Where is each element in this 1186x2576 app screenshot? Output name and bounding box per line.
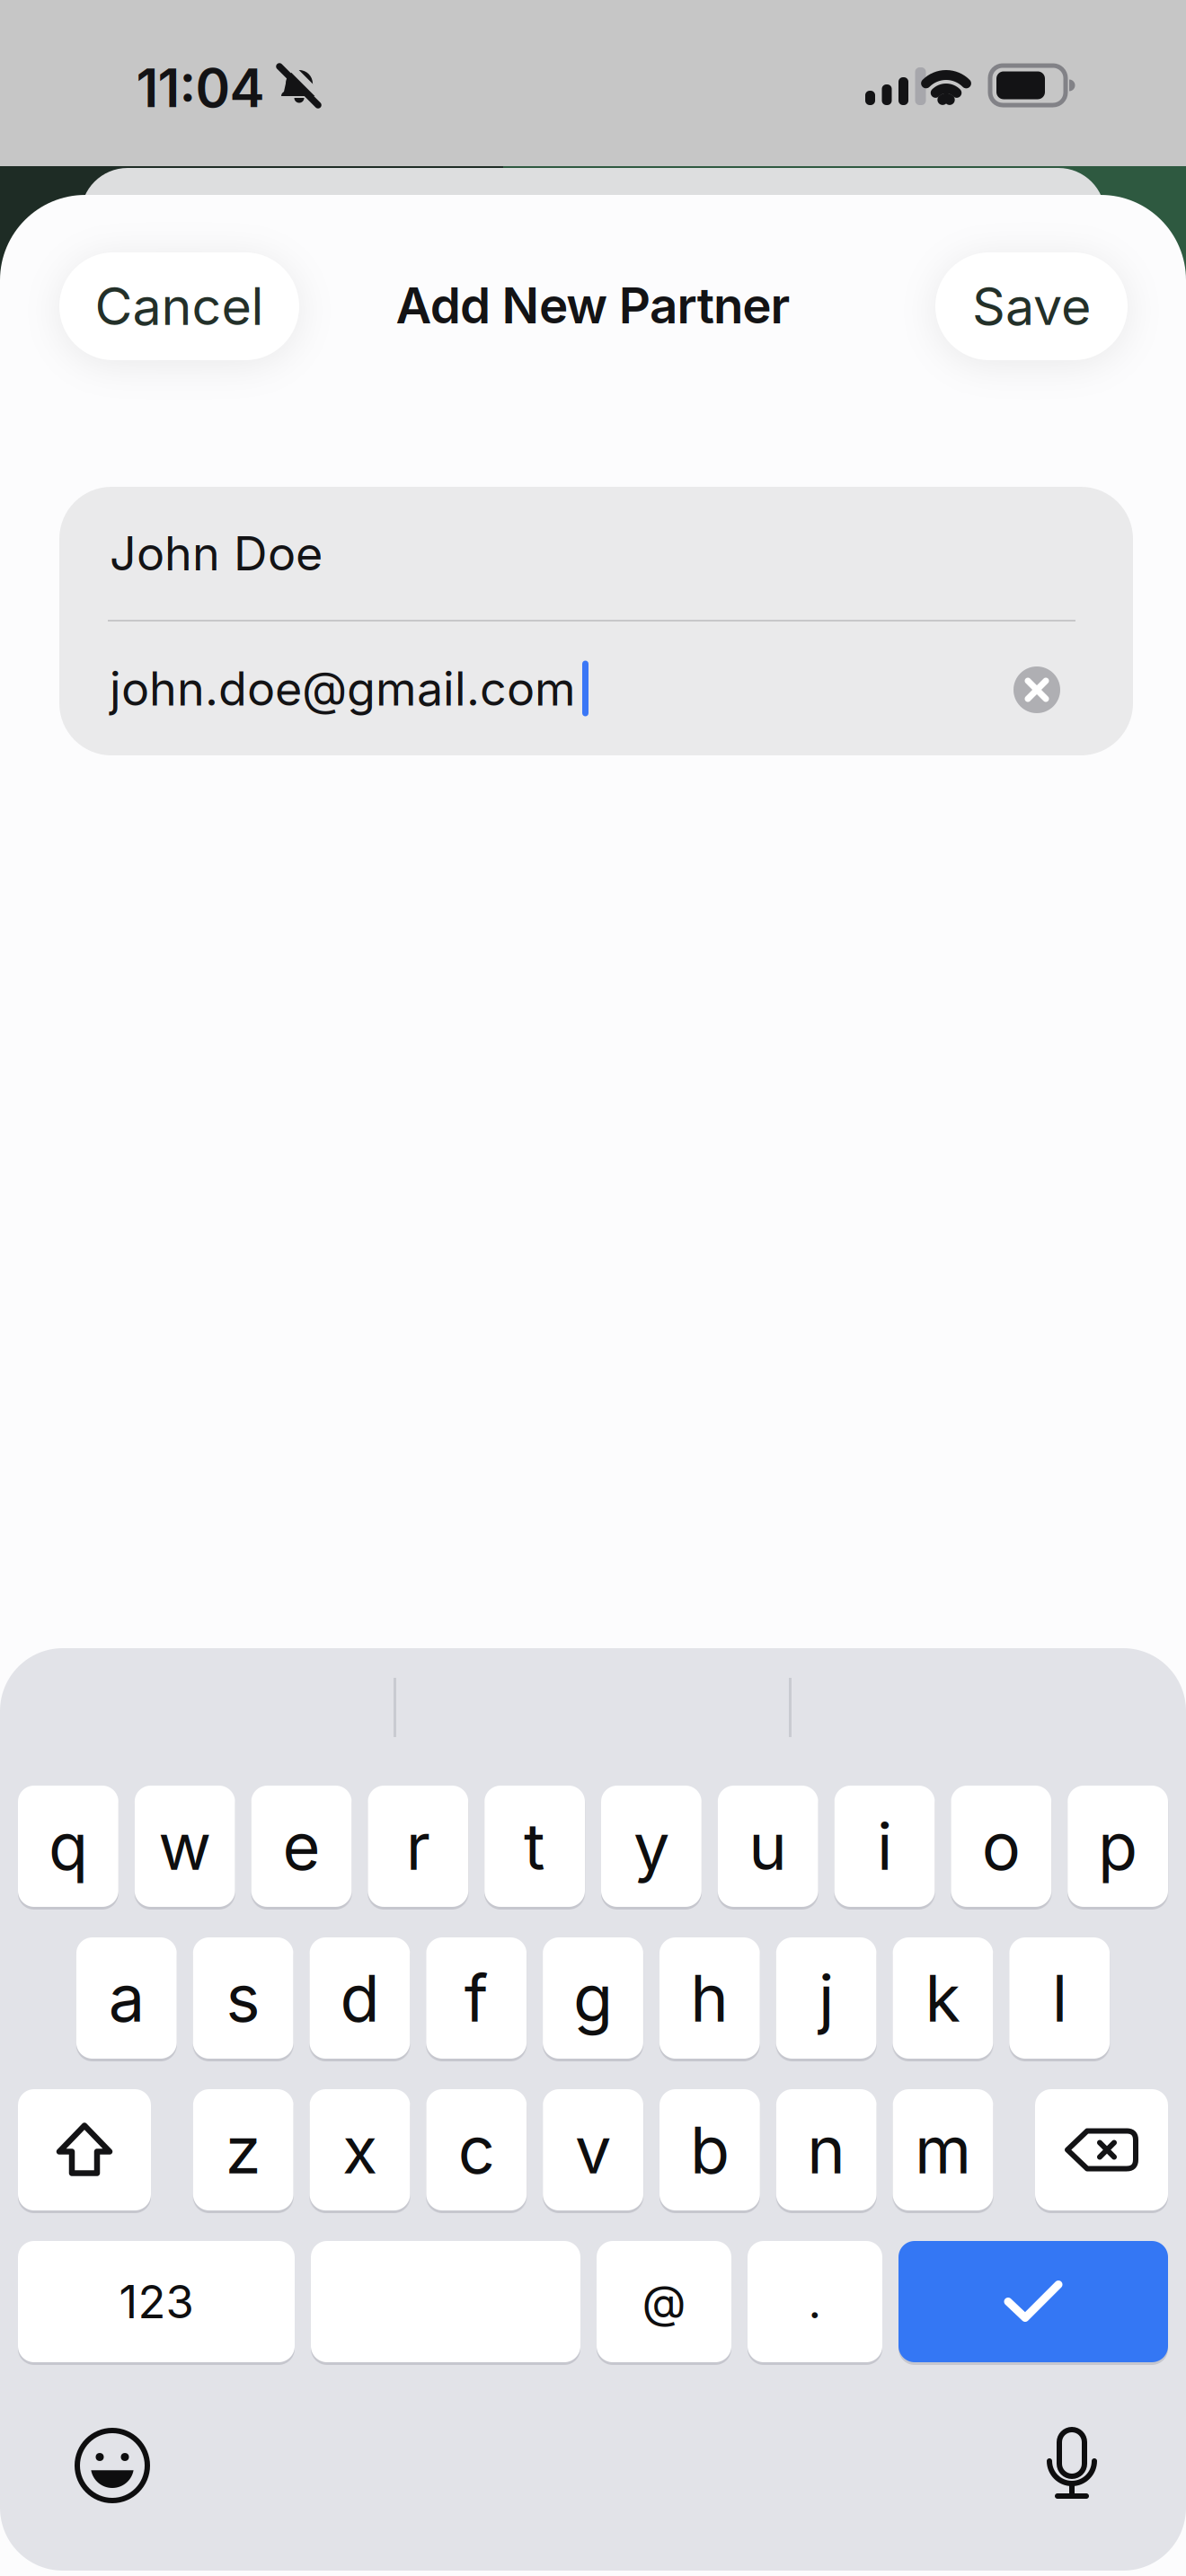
- button[interactable]: x: [310, 2089, 410, 2210]
- staticText: o: [982, 1807, 1020, 1885]
- button[interactable]: [898, 2241, 1168, 2362]
- staticText: a: [109, 1959, 144, 2037]
- staticText: b: [690, 2111, 729, 2189]
- staticText: n: [807, 2111, 846, 2189]
- button[interactable]: @: [597, 2241, 731, 2362]
- button[interactable]: k: [893, 1937, 993, 2059]
- button[interactable]: e: [251, 1786, 352, 1907]
- staticText: 11:04: [136, 56, 265, 120]
- staticText: t: [524, 1807, 545, 1885]
- button[interactable]: f: [426, 1937, 527, 2059]
- staticText: 123: [119, 2274, 194, 2329]
- button[interactable]: g: [543, 1937, 643, 2059]
- staticText: c: [458, 2111, 495, 2189]
- staticText: y: [633, 1807, 669, 1885]
- staticText: x: [342, 2111, 377, 2189]
- staticText: e: [283, 1807, 320, 1885]
- button[interactable]: [1035, 2089, 1168, 2210]
- button[interactable]: .: [748, 2241, 882, 2362]
- button[interactable]: v: [543, 2089, 643, 2210]
- button[interactable]: a: [76, 1937, 177, 2059]
- button[interactable]: c: [426, 2089, 527, 2210]
- button[interactable]: w: [135, 1786, 235, 1907]
- staticText: john.doe@gmail.com: [110, 660, 576, 717]
- staticText: u: [749, 1807, 787, 1885]
- button[interactable]: p: [1068, 1786, 1168, 1907]
- button[interactable]: o: [951, 1786, 1051, 1907]
- staticText: v: [575, 2111, 611, 2189]
- button[interactable]: s: [193, 1937, 293, 2059]
- staticText: p: [1098, 1807, 1138, 1885]
- button[interactable]: [18, 2089, 151, 2210]
- button[interactable]: Save: [935, 252, 1128, 360]
- staticText: Add New Partner: [396, 276, 790, 335]
- button[interactable]: n: [776, 2089, 877, 2210]
- staticText: s: [226, 1959, 260, 2037]
- staticText: j: [819, 1959, 834, 2037]
- button[interactable]: u: [718, 1786, 818, 1907]
- staticText: .: [808, 2274, 822, 2329]
- staticText: h: [690, 1959, 729, 2037]
- staticText: Cancel: [95, 275, 264, 337]
- button[interactable]: l: [1009, 1937, 1110, 2059]
- button[interactable]: r: [368, 1786, 468, 1907]
- button[interactable]: 123: [18, 2241, 295, 2362]
- button[interactable]: z: [193, 2089, 293, 2210]
- staticText: k: [925, 1959, 961, 2037]
- button[interactable]: d: [310, 1937, 410, 2059]
- button[interactable]: j: [776, 1937, 876, 2059]
- staticText: w: [158, 1807, 211, 1885]
- button[interactable]: [1013, 666, 1060, 713]
- staticText: g: [573, 1959, 613, 2037]
- button[interactable]: [1040, 2428, 1103, 2500]
- button[interactable]: m: [893, 2089, 993, 2210]
- staticText: q: [48, 1807, 88, 1885]
- staticText: d: [340, 1959, 380, 2037]
- button[interactable]: Cancel: [59, 252, 299, 360]
- button[interactable]: b: [659, 2089, 760, 2210]
- staticText: f: [464, 1959, 489, 2037]
- button[interactable]: t: [484, 1786, 585, 1907]
- staticText: John Doe: [110, 525, 323, 581]
- button[interactable]: q: [18, 1786, 118, 1907]
- staticText: z: [225, 2111, 261, 2189]
- staticText: Save: [972, 275, 1091, 337]
- staticText: m: [915, 2111, 971, 2189]
- staticText: r: [406, 1807, 430, 1885]
- button[interactable]: i: [834, 1786, 935, 1907]
- staticText: @: [642, 2274, 686, 2329]
- staticText: i: [877, 1807, 892, 1885]
- button[interactable]: y: [601, 1786, 702, 1907]
- staticText: l: [1052, 1959, 1067, 2037]
- button[interactable]: h: [659, 1937, 760, 2059]
- button[interactable]: [72, 2425, 153, 2506]
